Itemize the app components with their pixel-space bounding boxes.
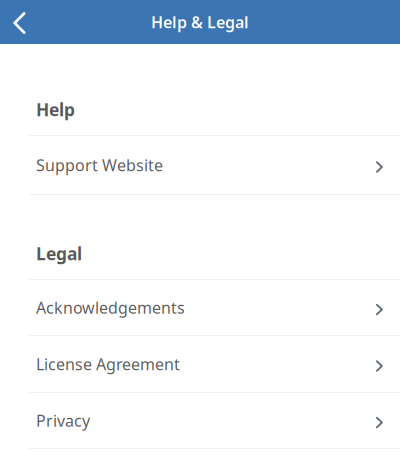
button[interactable]: Back xyxy=(0,0,53,44)
staticText: Support Website xyxy=(36,154,163,176)
staticText: License Agreement xyxy=(36,353,180,375)
staticText: Acknowledgements xyxy=(36,297,185,318)
staticText: Legal xyxy=(36,242,82,265)
button[interactable]: Privacy xyxy=(0,393,400,449)
button[interactable]: Acknowledgements xyxy=(0,280,400,336)
staticText: Privacy xyxy=(36,410,90,431)
button[interactable]: Support Website xyxy=(0,136,400,195)
button[interactable]: License Agreement xyxy=(0,336,400,393)
staticText: Help & Legal xyxy=(151,11,249,33)
staticText: Help xyxy=(36,98,75,121)
